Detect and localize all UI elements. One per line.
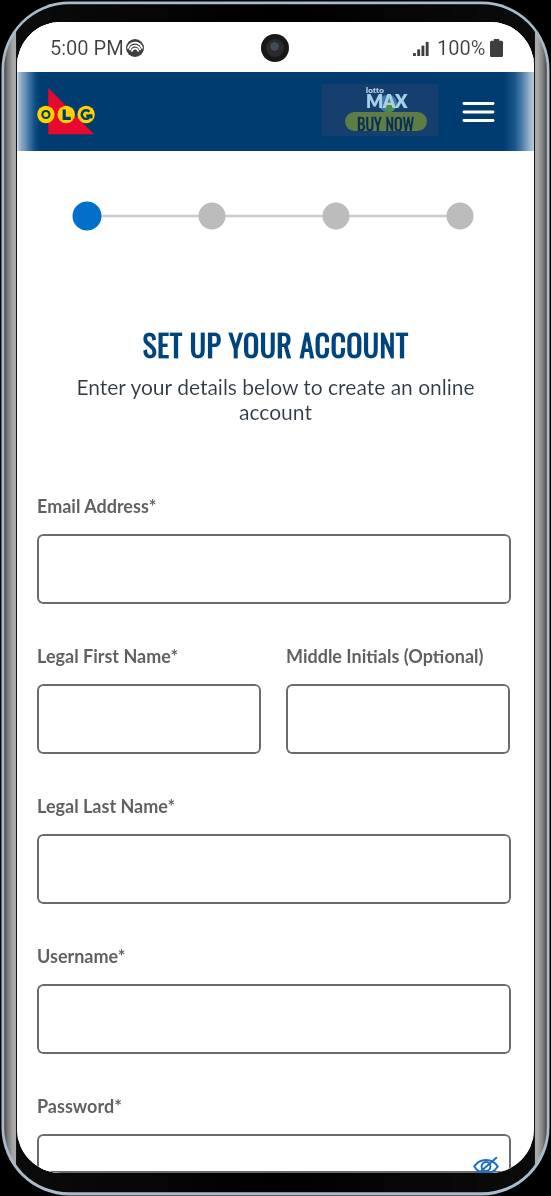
button[interactable] [37,1134,511,1173]
staticText: Legal Last Name* [37,795,176,817]
staticText: Email Address* [37,495,157,517]
button[interactable]: BUY NOW [345,112,427,131]
staticText: Legal First Name* [37,645,179,667]
staticText: 100% [437,36,486,59]
staticText: Username* [37,945,126,967]
button[interactable]: Show password [469,1149,503,1173]
button[interactable]: Menu [455,92,501,132]
staticText: MAX [366,90,407,112]
button[interactable] [37,984,511,1054]
button[interactable] [286,684,510,754]
staticText: Middle Initials (Optional) [286,645,484,667]
button[interactable] [37,534,511,604]
button[interactable] [37,684,261,754]
staticText: BUY NOW [357,112,415,131]
staticText: lotto [366,85,385,95]
button[interactable]: OLG home [39,84,97,140]
staticText: 5:00 PM [50,36,124,59]
staticText: Password* [37,1095,122,1117]
button[interactable]: Lotto Max buy now [322,84,438,136]
staticText: Enter your details below to create an on… [63,374,488,425]
staticText: SET UP YOUR ACCOUNT [17,322,534,366]
button[interactable] [37,834,511,904]
